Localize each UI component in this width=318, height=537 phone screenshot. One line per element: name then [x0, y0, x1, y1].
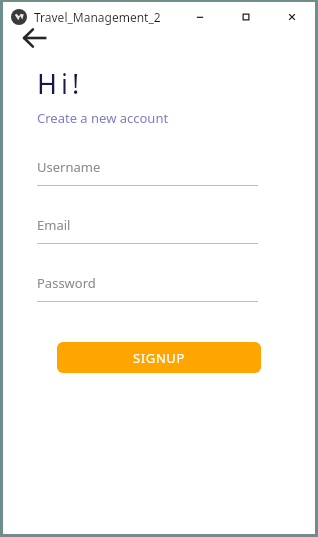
staticText: SIGNUP [133, 349, 185, 367]
button[interactable]: Password [37, 274, 258, 302]
button[interactable]: Close [269, 2, 315, 32]
staticText: Travel_Management_2 [34, 9, 161, 25]
button[interactable]: Create a new account [37, 109, 169, 127]
staticText: Hi! [37, 65, 84, 102]
button[interactable]: SIGNUP [57, 342, 261, 373]
staticText: Username [37, 158, 101, 176]
button[interactable]: Username [37, 158, 258, 186]
button[interactable]: Back [15, 18, 55, 58]
button[interactable]: Email [37, 216, 258, 244]
button[interactable]: Maximize [223, 2, 269, 32]
staticText: Email [37, 216, 71, 234]
staticText: Password [37, 274, 96, 292]
button[interactable]: Minimize [177, 2, 223, 32]
